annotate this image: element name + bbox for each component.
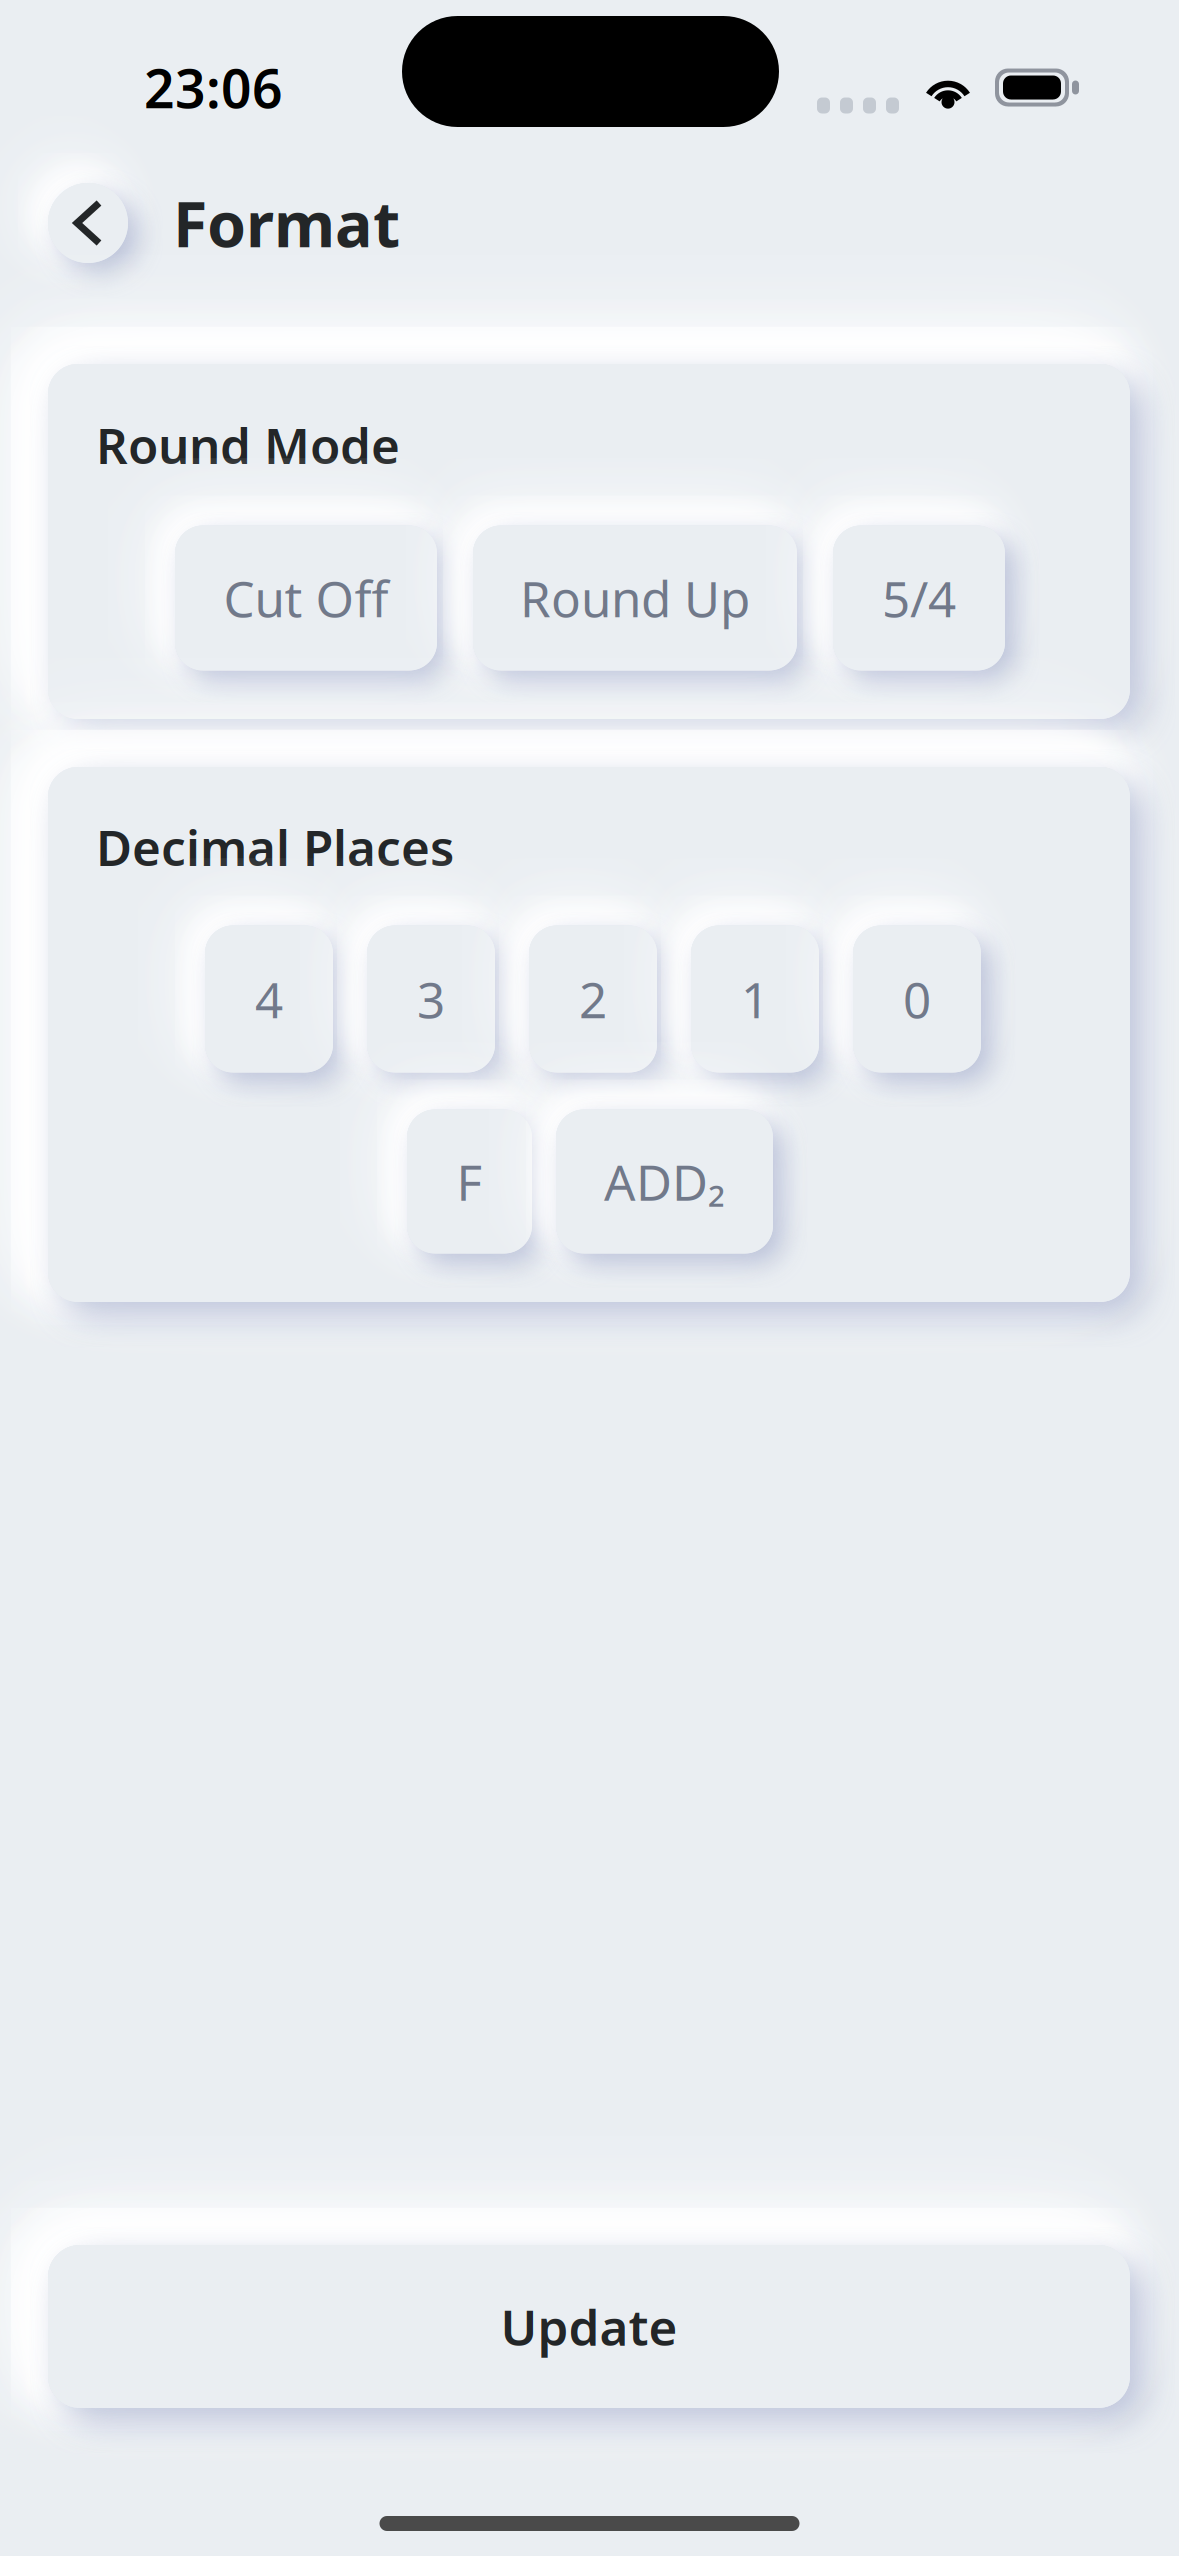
button[interactable]: Update [48, 2245, 1130, 2408]
button[interactable]: 2 [529, 925, 657, 1072]
staticText: F [456, 1149, 482, 1214]
staticText: Update [500, 2294, 677, 2359]
button[interactable]: 1 [691, 925, 819, 1072]
staticText: Round Mode [96, 412, 400, 477]
staticText: ADD₂ [604, 1149, 725, 1214]
button[interactable]: 0 [853, 925, 981, 1072]
button[interactable]: 3 [367, 925, 495, 1072]
button[interactable]: ADD₂ [556, 1109, 773, 1253]
button[interactable]: Back [48, 183, 128, 263]
staticText: Decimal Places [96, 814, 454, 879]
staticText: Round Up [520, 565, 750, 631]
staticText: 1 [741, 966, 769, 1032]
staticText: Format [173, 181, 400, 265]
staticText: 0 [903, 966, 931, 1032]
button[interactable]: F [407, 1109, 532, 1253]
staticText: 4 [255, 966, 283, 1032]
staticText: 5/4 [882, 565, 956, 631]
button[interactable]: Round Up [473, 525, 797, 670]
staticText: 23:06 [144, 52, 283, 123]
button[interactable]: Cut Off [175, 525, 437, 670]
button[interactable]: 4 [205, 925, 333, 1072]
staticText: 3 [417, 966, 445, 1032]
button[interactable]: 5/4 [833, 525, 1005, 670]
staticText: 2 [579, 966, 607, 1032]
staticText: Cut Off [223, 565, 388, 631]
